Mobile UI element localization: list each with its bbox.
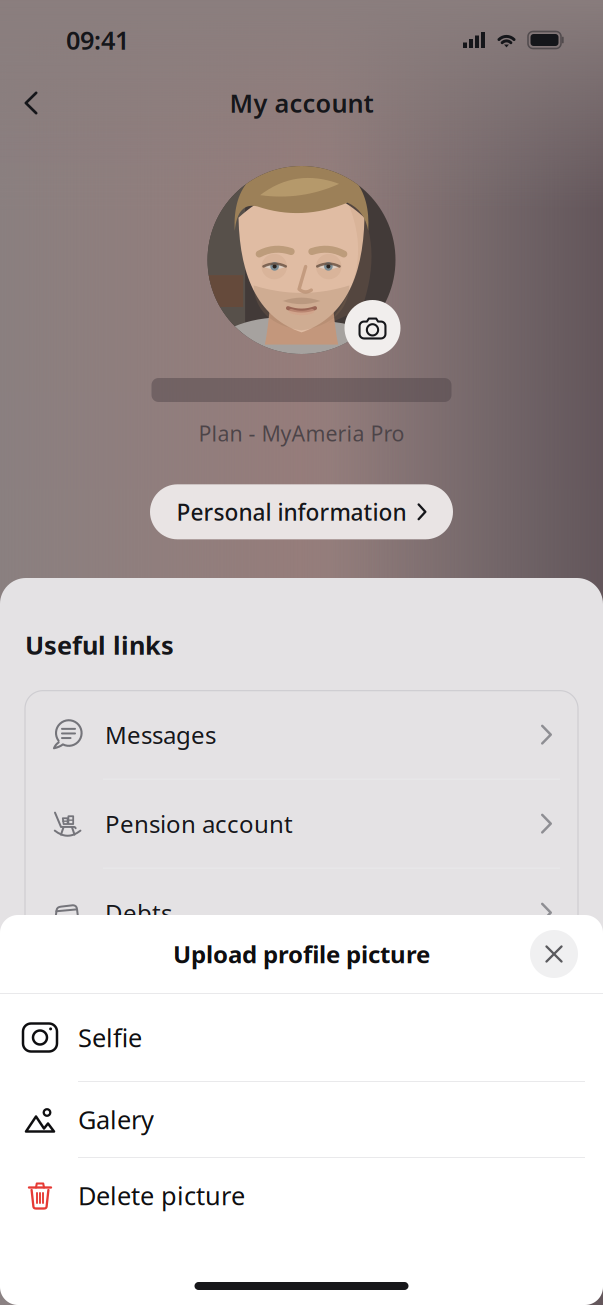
staticText: Pension account	[105, 808, 293, 840]
staticText: Selfie	[78, 1021, 142, 1054]
staticText: Messages	[105, 719, 216, 751]
button[interactable]: Galery	[0, 1082, 603, 1157]
button[interactable]: Selfie	[0, 994, 603, 1081]
button[interactable]: Change profile picture	[344, 300, 400, 356]
staticText: Delete picture	[78, 1179, 245, 1212]
staticText: Galery	[78, 1103, 154, 1136]
staticText: 09:41	[66, 23, 129, 57]
button[interactable]: Debts	[25, 869, 578, 957]
staticText: Plan - MyAmeria Pro	[198, 419, 404, 447]
button[interactable]: Personal information	[150, 484, 453, 539]
button[interactable]: Pension account	[25, 780, 578, 868]
staticText: Useful links	[25, 628, 174, 662]
staticText: Upload profile picture	[173, 938, 430, 970]
button[interactable]: Delete picture	[0, 1158, 603, 1233]
staticText: My account	[229, 86, 373, 120]
staticText: Personal information	[176, 497, 406, 527]
button[interactable]: Messages	[25, 691, 578, 779]
button[interactable]: Close	[530, 930, 578, 978]
staticText: Debts	[105, 897, 172, 929]
button[interactable]: Back	[8, 80, 54, 126]
